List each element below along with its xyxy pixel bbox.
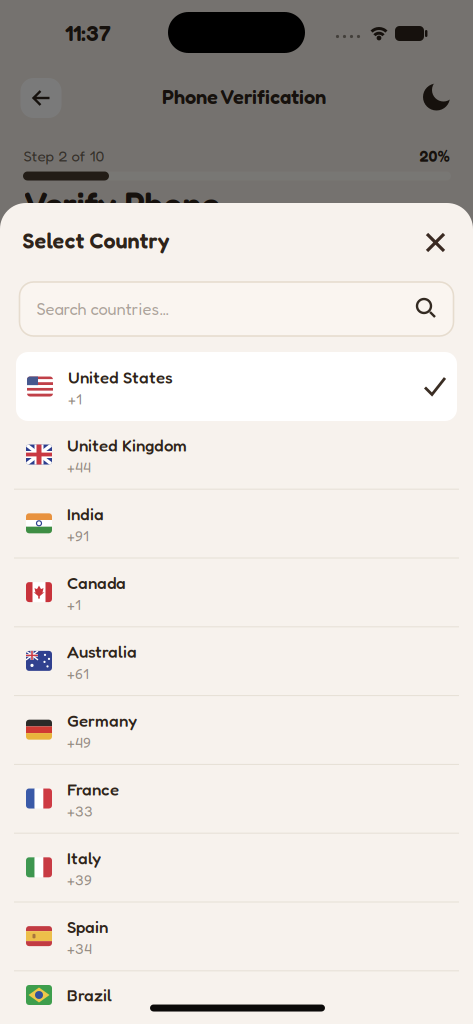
staticText: France bbox=[67, 779, 119, 799]
button[interactable]: Australia bbox=[26, 626, 459, 695]
button[interactable]: Back bbox=[20, 78, 61, 118]
button[interactable]: Dark mode bbox=[419, 80, 453, 114]
staticText: United States bbox=[68, 367, 173, 387]
button[interactable]: Brazil bbox=[26, 975, 459, 1015]
staticText: Select Country bbox=[22, 227, 169, 253]
staticText: India bbox=[67, 504, 104, 524]
staticText: Search countries... bbox=[36, 299, 168, 319]
staticText: Australia bbox=[67, 641, 137, 662]
button[interactable]: Germany bbox=[26, 695, 459, 764]
button[interactable]: Close bbox=[413, 220, 457, 264]
button[interactable]: India bbox=[26, 489, 459, 558]
button[interactable]: Canada bbox=[26, 558, 459, 627]
staticText: Step 2 of 10 bbox=[23, 147, 104, 165]
staticText: +61 bbox=[67, 665, 89, 682]
staticText: +39 bbox=[67, 871, 92, 889]
button[interactable]: Italy bbox=[26, 833, 459, 902]
staticText: 20% bbox=[419, 147, 449, 165]
button[interactable]: Spain bbox=[26, 902, 459, 971]
staticText: Brazil bbox=[67, 985, 112, 1005]
staticText: 11:37 bbox=[65, 20, 111, 46]
staticText: +1 bbox=[67, 596, 81, 613]
staticText: +1 bbox=[68, 390, 82, 408]
staticText: Phone Verification bbox=[162, 84, 326, 109]
staticText: +44 bbox=[67, 458, 91, 476]
staticText: +49 bbox=[67, 734, 91, 751]
button[interactable]: United Kingdom bbox=[26, 420, 459, 489]
button[interactable]: France bbox=[26, 764, 459, 833]
staticText: Germany bbox=[67, 710, 137, 731]
staticText: Canada bbox=[67, 573, 126, 593]
staticText: +34 bbox=[67, 940, 92, 957]
button[interactable]: United States bbox=[16, 352, 457, 421]
staticText: Italy bbox=[67, 848, 101, 868]
staticText: Verify Phone bbox=[23, 183, 219, 224]
staticText: Spain bbox=[67, 917, 108, 937]
staticText: United Kingdom bbox=[67, 435, 187, 455]
button[interactable]: Search countries bbox=[19, 282, 453, 336]
staticText: +91 bbox=[67, 527, 89, 545]
staticText: +33 bbox=[67, 802, 93, 820]
